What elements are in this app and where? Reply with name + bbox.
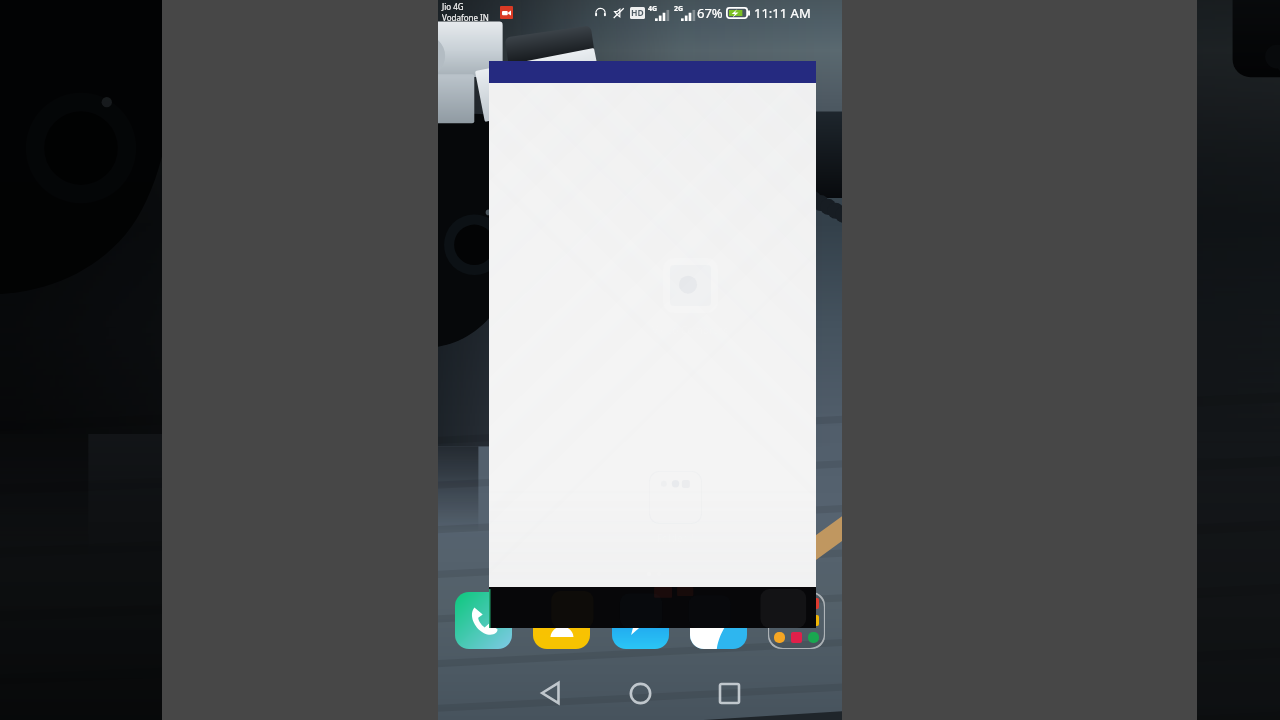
button[interactable]: Folder [768, 592, 825, 649]
button[interactable]: Contacts [533, 592, 590, 649]
staticText: Vodafone IN [442, 12, 489, 23]
button[interactable]: Messages [612, 592, 669, 649]
button[interactable]: Home [618, 671, 662, 715]
staticText: 4G [648, 4, 658, 14]
button[interactable]: Phone [455, 592, 512, 649]
staticText: 67% [697, 4, 723, 22]
staticText: Jio 4G [442, 1, 464, 12]
button[interactable]: Recents [707, 671, 751, 715]
staticText: 2G [674, 4, 684, 14]
button[interactable]: Browser [690, 592, 747, 649]
button[interactable]: Back [528, 671, 572, 715]
staticText: 11:11 AM [754, 4, 811, 22]
staticText: HD [631, 7, 644, 19]
